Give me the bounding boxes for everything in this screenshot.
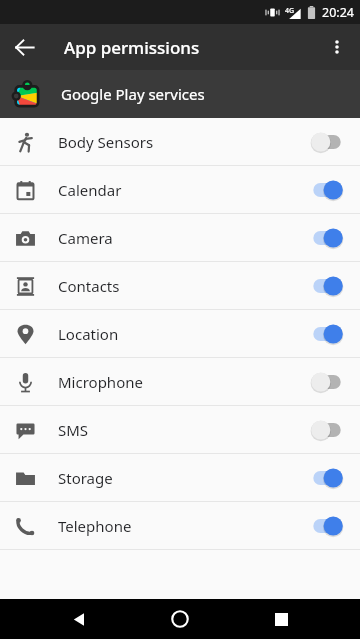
staticText: Google Play services (61, 84, 205, 104)
button[interactable]: SMS (0, 406, 360, 453)
staticText: App permissions (64, 36, 200, 59)
button[interactable]: Permission denied (305, 126, 349, 158)
staticText: Camera (58, 228, 113, 248)
button[interactable]: Telephone (0, 502, 360, 549)
button[interactable]: Permission denied (305, 366, 349, 398)
button[interactable]: Body Sensors (0, 118, 360, 165)
button[interactable]: Permission allowed (305, 318, 349, 350)
staticText: Contacts (58, 276, 120, 296)
button[interactable]: Storage (0, 454, 360, 501)
button[interactable]: Back (57, 599, 101, 639)
button[interactable]: Microphone (0, 358, 360, 405)
button[interactable]: Permission allowed (305, 222, 349, 254)
staticText: 4G (285, 6, 295, 16)
button[interactable]: Calendar (0, 166, 360, 213)
button[interactable]: Location (0, 310, 360, 357)
button[interactable]: Permission denied (305, 414, 349, 446)
staticText: 20:24 (322, 4, 354, 21)
button[interactable]: More options (317, 27, 357, 67)
button[interactable]: Recent apps (259, 599, 303, 639)
button[interactable]: Permission allowed (305, 270, 349, 302)
button[interactable]: Back (4, 27, 44, 67)
button[interactable]: Home (158, 599, 202, 639)
button[interactable]: Permission allowed (305, 174, 349, 206)
staticText: Microphone (58, 372, 143, 392)
button[interactable]: Permission allowed (305, 510, 349, 542)
button[interactable]: Camera (0, 214, 360, 261)
staticText: Storage (58, 468, 113, 488)
button[interactable]: Contacts (0, 262, 360, 309)
button[interactable]: Permission allowed (305, 462, 349, 494)
staticText: Location (58, 324, 119, 344)
staticText: Body Sensors (58, 132, 154, 152)
staticText: SMS (58, 420, 89, 440)
staticText: Calendar (58, 180, 122, 200)
button[interactable]: Google Play services (0, 70, 360, 118)
staticText: Telephone (58, 516, 132, 536)
